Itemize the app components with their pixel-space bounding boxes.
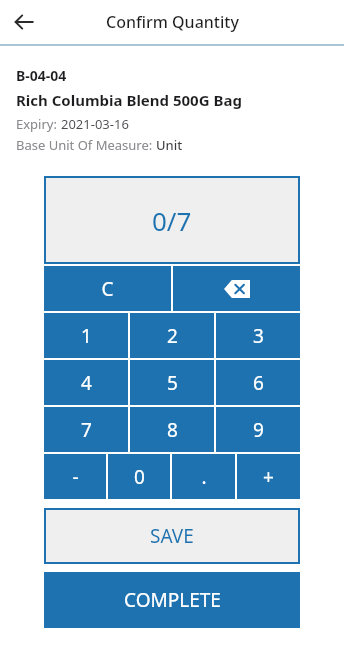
staticText: - — [72, 464, 79, 490]
button[interactable]: COMPLETE — [44, 572, 300, 628]
staticText: Base Unit Of Measure: — [16, 136, 156, 154]
staticText: 2 — [167, 323, 178, 349]
button[interactable]: - — [44, 454, 106, 499]
staticText: Expiry: — [16, 115, 61, 133]
staticText: 7 — [81, 417, 92, 443]
button[interactable]: Backspace — [173, 266, 300, 311]
button[interactable]: 0 — [108, 454, 170, 499]
button[interactable]: 8 — [130, 407, 214, 452]
staticText: 2021-03-16 — [61, 115, 129, 133]
staticText: B-04-04 — [16, 66, 67, 85]
staticText: 0/7 — [152, 203, 192, 238]
button[interactable]: C — [44, 266, 171, 311]
staticText: Unit — [156, 136, 183, 154]
button[interactable]: + — [237, 454, 300, 499]
staticText: + — [263, 464, 274, 490]
staticText: 6 — [253, 370, 264, 396]
staticText: Rich Columbia Blend 500G Bag — [16, 90, 242, 110]
staticText: 0 — [134, 464, 145, 490]
staticText: 3 — [253, 323, 264, 349]
button[interactable]: . — [172, 454, 235, 499]
button[interactable]: 2 — [130, 313, 214, 358]
button[interactable]: Back — [6, 4, 42, 40]
button[interactable]: 1 — [44, 313, 128, 358]
button[interactable]: SAVE — [44, 508, 300, 564]
button[interactable]: 4 — [44, 360, 128, 405]
staticText: 4 — [81, 370, 92, 396]
button[interactable]: 3 — [216, 313, 300, 358]
button[interactable]: 7 — [44, 407, 128, 452]
staticText: . — [201, 464, 207, 490]
staticText: SAVE — [150, 523, 194, 549]
staticText: 5 — [167, 370, 178, 396]
staticText: Confirm Quantity — [106, 11, 239, 33]
staticText: 1 — [81, 323, 92, 349]
button[interactable]: 5 — [130, 360, 214, 405]
button[interactable]: 9 — [216, 407, 300, 452]
staticText: 8 — [167, 417, 178, 443]
staticText: 9 — [253, 417, 264, 443]
staticText: C — [101, 276, 114, 302]
staticText: COMPLETE — [124, 587, 221, 613]
button[interactable]: 6 — [216, 360, 300, 405]
